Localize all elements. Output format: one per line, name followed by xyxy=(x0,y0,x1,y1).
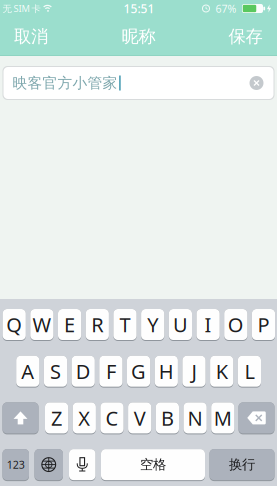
staticText: E xyxy=(64,311,75,338)
staticText: L xyxy=(244,358,254,384)
staticText: Z xyxy=(51,405,62,431)
staticText: O xyxy=(228,311,244,338)
staticText: Q xyxy=(6,311,22,338)
staticText: N xyxy=(188,405,203,431)
staticText: 映客官方小管家 xyxy=(12,74,117,92)
staticText: W xyxy=(32,311,51,338)
staticText: 昵称 xyxy=(121,26,155,47)
staticText: A xyxy=(21,358,34,384)
staticText: V xyxy=(134,405,146,431)
staticText: 换行 xyxy=(229,456,255,473)
staticText: C xyxy=(105,405,118,431)
staticText: Y xyxy=(147,311,158,338)
staticText: U xyxy=(173,311,188,338)
staticText: K xyxy=(216,358,228,384)
staticText: 保存 xyxy=(228,26,262,47)
staticText: M xyxy=(214,405,232,431)
staticText: P xyxy=(257,311,269,338)
staticText: D xyxy=(76,358,91,384)
staticText: X xyxy=(78,405,90,431)
staticText: J xyxy=(191,358,196,384)
staticText: 空格 xyxy=(140,456,166,473)
staticText: T xyxy=(119,311,130,338)
staticText: G xyxy=(131,358,146,384)
staticText: 15:51 xyxy=(123,0,154,16)
staticText: F xyxy=(106,358,116,384)
staticText: I xyxy=(205,311,212,338)
staticText: 取消 xyxy=(14,26,48,47)
staticText: R xyxy=(91,311,103,338)
staticText: S xyxy=(50,358,61,384)
staticText: 无 SIM 卡 xyxy=(2,2,40,15)
staticText: 67% xyxy=(215,1,236,16)
staticText: 123 xyxy=(7,457,25,472)
staticText: H xyxy=(159,358,174,384)
staticText: B xyxy=(161,405,174,431)
